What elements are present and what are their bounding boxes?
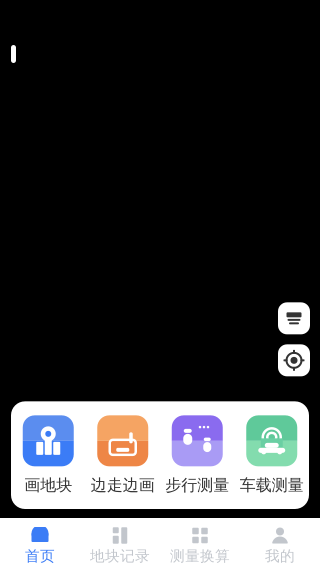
- button[interactable]: 地块记录: [80, 527, 160, 565]
- button[interactable]: Map layers: [278, 302, 310, 334]
- button[interactable]: 车载测量: [234, 415, 309, 495]
- button[interactable]: 测量换算: [160, 527, 240, 565]
- button[interactable]: 首页: [0, 527, 80, 565]
- staticText: 步行测量: [165, 475, 229, 495]
- staticText: 首页: [25, 547, 55, 565]
- button[interactable]: 边走边画: [85, 415, 160, 495]
- staticText: 地块记录: [90, 547, 150, 565]
- staticText: 我的: [265, 547, 295, 565]
- button[interactable]: 画地块: [11, 415, 85, 495]
- staticText: 画地块: [24, 475, 72, 495]
- staticText: 边走边画: [91, 475, 155, 495]
- button[interactable]: 我的: [240, 527, 320, 565]
- button[interactable]: My location: [278, 344, 310, 376]
- staticText: 测量换算: [170, 547, 230, 565]
- button[interactable]: 步行测量: [160, 415, 234, 495]
- staticText: 车载测量: [240, 475, 304, 495]
